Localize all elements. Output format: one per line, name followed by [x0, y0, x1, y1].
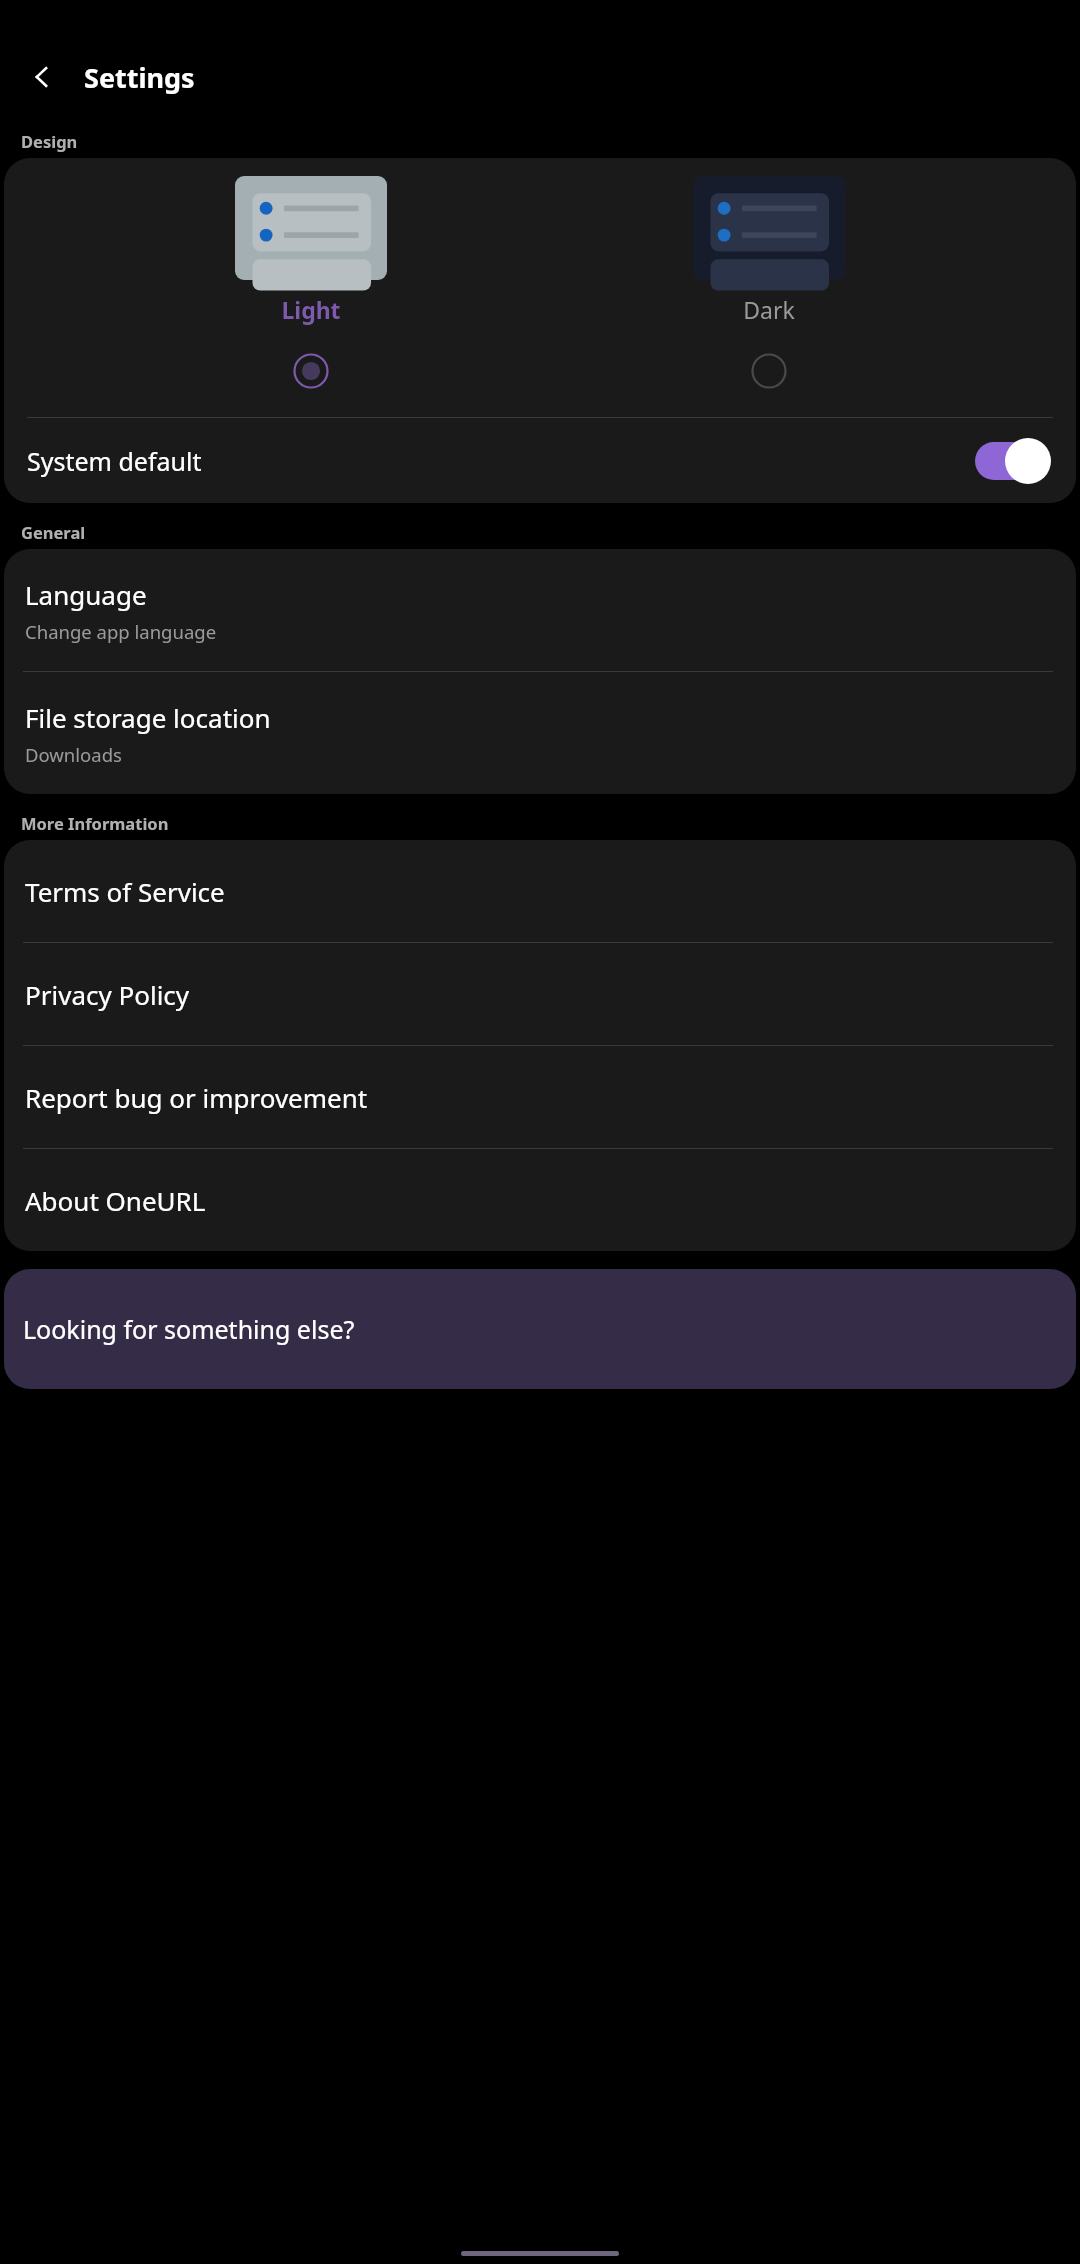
staticText: File storage location: [25, 700, 271, 735]
button[interactable]: Looking for something else?: [4, 1269, 1076, 1389]
staticText: Design: [21, 130, 78, 152]
staticText: Privacy Policy: [25, 977, 190, 1012]
button[interactable]: Selected: [287, 347, 335, 395]
staticText: Downloads: [25, 742, 122, 767]
staticText: General: [21, 521, 86, 543]
staticText: More Information: [21, 812, 169, 834]
button[interactable]: Terms of Service: [4, 840, 1076, 942]
staticText: System default: [27, 444, 975, 478]
button[interactable]: System default toggle: [975, 435, 1053, 487]
staticText: Report bug or improvement: [25, 1080, 368, 1115]
staticText: Change app language: [25, 619, 217, 644]
staticText: Dark: [743, 294, 795, 325]
button[interactable]: File storage location: [4, 672, 1076, 794]
button[interactable]: Dark: [619, 176, 919, 395]
staticText: Terms of Service: [25, 874, 225, 909]
button[interactable]: Back: [16, 51, 68, 103]
staticText: Settings: [84, 59, 195, 96]
button[interactable]: Report bug or improvement: [4, 1046, 1076, 1148]
button[interactable]: About OneURL: [4, 1149, 1076, 1251]
button[interactable]: Privacy Policy: [4, 943, 1076, 1045]
button[interactable]: Language: [4, 549, 1076, 671]
button[interactable]: Not selected: [745, 347, 793, 395]
staticText: About OneURL: [25, 1183, 206, 1218]
staticText: Language: [25, 577, 147, 612]
staticText: Looking for something else?: [23, 1312, 355, 1346]
button[interactable]: System default: [4, 418, 1076, 503]
staticText: Light: [281, 294, 341, 325]
button[interactable]: Light: [161, 176, 461, 395]
